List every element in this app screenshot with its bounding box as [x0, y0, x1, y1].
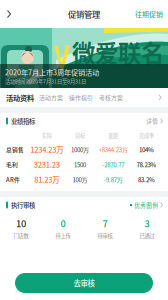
- button[interactable]: 0: [42, 213, 84, 243]
- staticText: 考核方案: [99, 93, 123, 102]
- staticText: 目标: [75, 132, 85, 139]
- staticText: 活动方案: [39, 93, 63, 102]
- staticText: 微爱联名: [72, 35, 164, 69]
- staticText: 详情: [146, 117, 158, 125]
- staticText: 待上传: [55, 232, 70, 240]
- staticText: 毛利: [6, 160, 18, 169]
- staticText: |: [95, 93, 97, 102]
- button[interactable]: 活动资料: [6, 88, 34, 107]
- button[interactable]: 去审核: [15, 273, 153, 293]
- staticText: 10: [16, 216, 26, 230]
- staticText: 去审核: [73, 278, 94, 288]
- button[interactable]: 活动方案: [39, 88, 63, 107]
- button[interactable]: 考核方案: [99, 88, 123, 107]
- staticText: -9.87万: [104, 175, 123, 184]
- staticText: 3: [144, 216, 149, 230]
- staticText: |: [65, 93, 67, 102]
- staticText: 1234.23万: [30, 144, 63, 155]
- staticText: 差距: [108, 132, 118, 139]
- staticText: 总销售: [6, 145, 24, 154]
- staticText: 完成率: [139, 132, 154, 139]
- staticText: 2020年7月上市3周年促销活动: [5, 67, 99, 77]
- staticText: 0: [60, 216, 65, 230]
- button[interactable]: 返回: [0, 3, 18, 25]
- staticText: 业绩指标: [11, 116, 35, 126]
- staticText: 门店数: [13, 232, 28, 240]
- staticText: 100万: [72, 175, 87, 184]
- staticText: 往期促销: [135, 9, 163, 19]
- staticText: 104%: [139, 145, 154, 154]
- staticText: 活动资料: [6, 92, 34, 103]
- staticText: -2870.77: [102, 160, 124, 169]
- staticText: 已通过: [139, 232, 154, 240]
- staticText: 优秀图例: [134, 201, 158, 209]
- staticText: 促销管理: [68, 8, 100, 20]
- button[interactable]: 10: [0, 213, 42, 243]
- staticText: AR件: [6, 175, 20, 184]
- button[interactable]: 操作指引: [69, 88, 93, 107]
- button[interactable]: 3: [126, 213, 168, 243]
- staticText: +8344.23万: [99, 145, 128, 154]
- button[interactable]: 更多: [156, 88, 164, 107]
- staticText: 3231.23: [34, 159, 60, 170]
- staticText: 7: [102, 216, 107, 230]
- staticText: 1000万: [71, 145, 89, 154]
- button[interactable]: 7: [84, 213, 126, 243]
- button[interactable]: 详情: [146, 113, 163, 129]
- button[interactable]: 往期促销: [135, 3, 168, 25]
- staticText: 操作指引: [69, 93, 93, 102]
- button[interactable]: 优秀图例: [130, 197, 163, 213]
- staticText: 待审核: [97, 232, 112, 240]
- staticText: 81.23万: [34, 174, 59, 185]
- staticText: 活动时间 2020年7月31日至8月31日: [5, 77, 86, 85]
- staticText: 1500: [74, 160, 86, 169]
- staticText: 执行审核: [11, 200, 35, 210]
- staticText: 实际: [42, 132, 52, 139]
- staticText: 83.2%: [138, 175, 155, 184]
- staticText: 78.23%: [136, 160, 156, 169]
